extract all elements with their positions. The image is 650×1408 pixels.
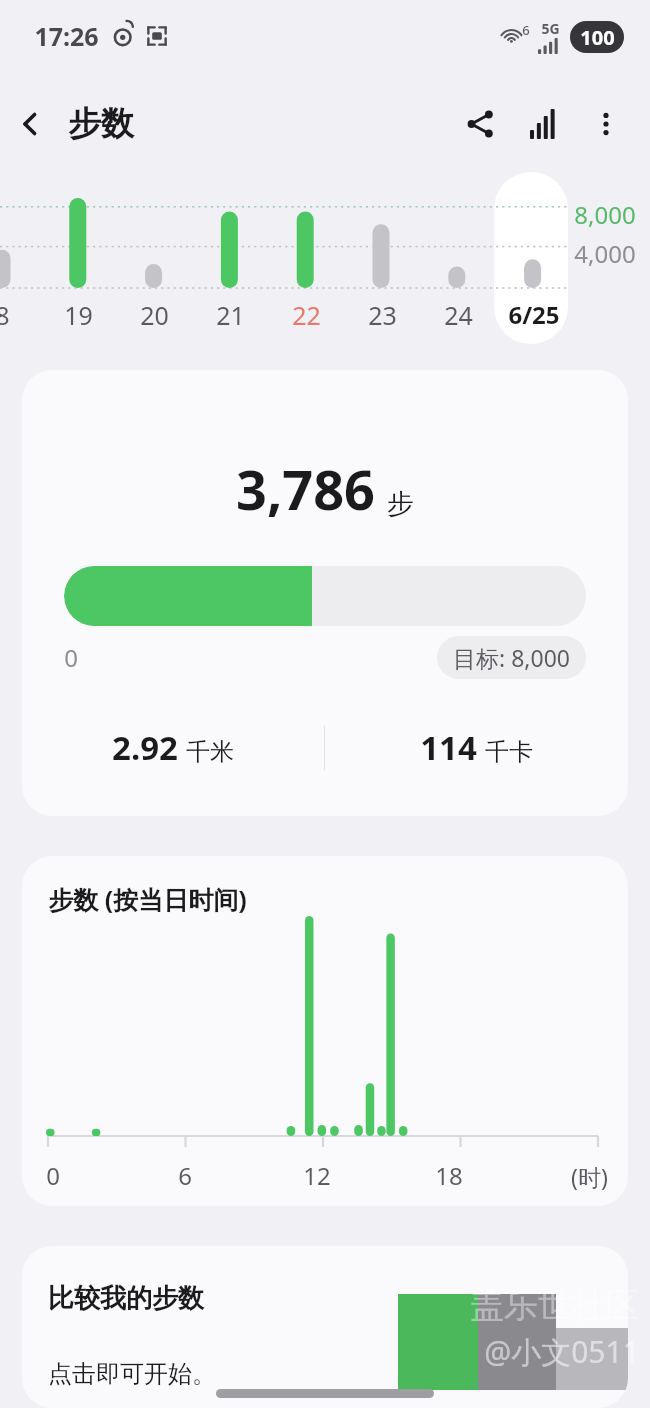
staticText: 3,786 [236, 452, 375, 526]
button[interactable]: 步数 (按当日时间) [22, 856, 628, 1206]
staticText: 5G [541, 19, 560, 38]
staticText: 比较我的步数 [48, 1282, 204, 1315]
staticText: 19 [64, 298, 93, 332]
staticText: 24 [444, 298, 473, 332]
staticText: 8 [0, 298, 10, 332]
staticText: 20 [140, 298, 169, 332]
staticText: 21 [216, 298, 245, 332]
button[interactable]: Back [0, 93, 62, 155]
staticText: 17:26 [34, 19, 99, 53]
button[interactable]: 3,786 [22, 370, 628, 816]
staticText: (时) [571, 1161, 608, 1192]
staticText: @小文0511 [484, 1331, 640, 1372]
staticText: 步数 (按当日时间) [48, 882, 247, 916]
staticText: 22 [292, 298, 321, 332]
button[interactable] [494, 172, 568, 344]
staticText: 114 [420, 725, 477, 770]
staticText: 6 [522, 21, 530, 39]
staticText: 100 [580, 24, 615, 51]
staticText: 23 [368, 298, 397, 332]
button[interactable]: More options [576, 94, 636, 154]
button[interactable]: Chart [512, 92, 576, 156]
staticText: 盖乐世社区 [470, 1284, 640, 1327]
staticText: 步 [387, 487, 414, 521]
staticText: 12 [303, 1159, 331, 1192]
staticText: 0 [64, 641, 78, 674]
staticText: 18 [435, 1159, 463, 1192]
staticText: 8,000 [574, 198, 636, 231]
staticText: 步数 [68, 103, 134, 145]
staticText: 目标: 8,000 [453, 642, 570, 673]
staticText: 6 [178, 1159, 192, 1192]
button[interactable]: Share [448, 92, 512, 156]
button[interactable]: 比较我的步数 [22, 1246, 628, 1408]
staticText: 0 [46, 1159, 60, 1192]
staticText: 千米 [186, 737, 234, 767]
staticText: 4,000 [574, 237, 636, 270]
staticText: 千卡 [485, 737, 533, 767]
staticText: 6/25 [508, 298, 560, 331]
staticText: 2.92 [112, 725, 178, 770]
staticText: 点击即可开始。 [48, 1359, 216, 1389]
